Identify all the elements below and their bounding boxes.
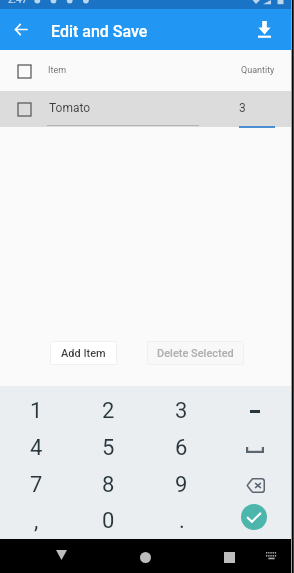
button[interactable]: Minus [218, 392, 291, 429]
button[interactable]: Space [218, 429, 291, 466]
staticText: . [179, 508, 185, 534]
staticText: 3 [175, 398, 188, 424]
staticText: Quantity [241, 65, 275, 76]
button[interactable]: 9 [145, 466, 218, 503]
button[interactable]: 8 [72, 466, 145, 503]
button[interactable]: Switch keyboard [256, 539, 286, 573]
button[interactable]: Add Item [50, 341, 117, 365]
staticText: , [34, 508, 39, 534]
button[interactable]: Space [238, 433, 272, 467]
button[interactable]: . [145, 503, 218, 539]
button[interactable]: Back [6, 15, 35, 44]
staticText: Tomato [49, 101, 91, 115]
staticText: 4 [30, 435, 43, 461]
staticText: 5 [102, 435, 115, 461]
staticText: Delete Selected [157, 347, 234, 360]
button[interactable]: 3 [145, 392, 218, 429]
staticText: 9 [175, 472, 188, 498]
button[interactable]: 7 [0, 466, 72, 503]
staticText: 0 [102, 508, 115, 534]
button[interactable]: Select row [17, 102, 31, 116]
staticText: Item [48, 65, 67, 76]
button[interactable]: Download [250, 15, 279, 44]
button[interactable]: Home [125, 539, 165, 573]
button[interactable]: Confirm [218, 503, 291, 539]
staticText: 6 [175, 435, 188, 461]
staticText: 2:47 [8, 0, 28, 3]
button[interactable]: Recents [209, 539, 249, 573]
staticText: 7 [30, 472, 43, 498]
staticText: Add Item [61, 347, 106, 360]
button[interactable]: Select row [0, 91, 291, 127]
button[interactable]: Confirm [241, 504, 267, 530]
button[interactable]: 5 [72, 429, 145, 466]
button[interactable]: Select all [17, 64, 31, 78]
staticText: 2 [102, 398, 115, 424]
staticText: Edit and Save [51, 22, 148, 41]
staticText: 3 [239, 101, 246, 115]
staticText: 1 [30, 398, 43, 424]
button[interactable]: Minus [238, 394, 272, 428]
button[interactable]: Delete Selected [147, 341, 244, 365]
button[interactable]: Back [41, 539, 81, 573]
button[interactable]: 6 [145, 429, 218, 466]
button[interactable]: 4 [0, 429, 72, 466]
button[interactable]: Backspace [218, 466, 291, 503]
button[interactable]: , [0, 503, 72, 539]
staticText: 8 [102, 472, 115, 498]
button[interactable]: Backspace [238, 468, 272, 502]
button[interactable]: 0 [72, 503, 145, 539]
button[interactable]: 2 [72, 392, 145, 429]
button[interactable]: 1 [0, 392, 72, 429]
